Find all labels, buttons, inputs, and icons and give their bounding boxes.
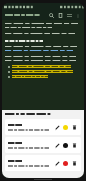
button[interactable]: Edit annotation: [53, 159, 61, 167]
button[interactable]: Page mode: [65, 11, 74, 20]
button[interactable]: Delete annotation: [70, 141, 78, 149]
button[interactable]: Annotation color: [61, 159, 70, 168]
button[interactable]: Annotation color: [61, 123, 70, 132]
button[interactable]: Delete annotation: [70, 123, 78, 131]
button[interactable]: Edit annotation: [53, 141, 61, 149]
button[interactable]: Bookmark: [56, 11, 65, 20]
button[interactable]: Edit annotation: [53, 123, 61, 131]
button[interactable]: More options: [74, 12, 81, 19]
button[interactable]: Edit annotation: [5, 137, 81, 153]
button[interactable]: Delete annotation: [70, 159, 78, 167]
button[interactable]: Edit annotation: [5, 155, 81, 171]
button[interactable]: Edit annotation: [5, 119, 81, 135]
button[interactable]: Annotation color: [61, 141, 70, 150]
button[interactable]: Search: [47, 11, 56, 20]
